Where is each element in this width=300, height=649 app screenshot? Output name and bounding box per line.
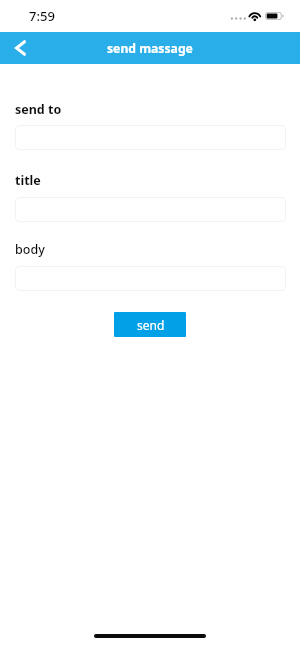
staticText: 7:59 xyxy=(29,7,55,25)
other: Signal strength xyxy=(231,17,245,21)
button[interactable]: send xyxy=(114,312,186,337)
button[interactable]: Back xyxy=(0,32,32,64)
button[interactable] xyxy=(15,197,286,222)
button[interactable] xyxy=(15,266,286,291)
other: Battery xyxy=(265,12,286,20)
staticText: body xyxy=(15,241,45,258)
staticText: send xyxy=(137,317,165,333)
other: Wi-Fi xyxy=(248,11,261,21)
staticText: send to xyxy=(15,101,62,118)
staticText: title xyxy=(15,172,41,189)
button[interactable] xyxy=(15,125,286,150)
staticText: send massage xyxy=(107,40,193,57)
